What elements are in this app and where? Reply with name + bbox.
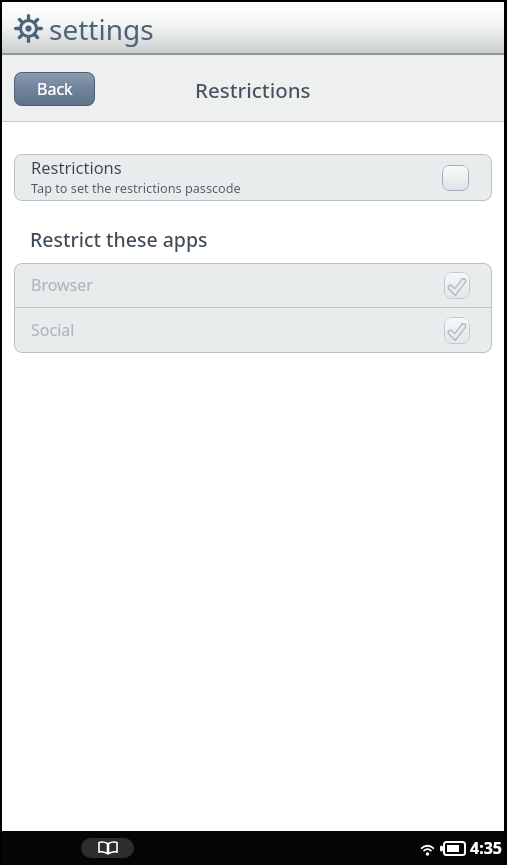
staticText: Tap to set the restrictions passcode	[31, 179, 241, 196]
staticText: 4:35	[470, 837, 502, 859]
staticText: Back	[37, 78, 73, 100]
button[interactable]: Social	[14, 308, 492, 352]
button[interactable]	[81, 838, 134, 858]
button[interactable]: Restrictions	[14, 154, 492, 201]
button[interactable]: Back	[14, 72, 95, 106]
staticText: settings	[49, 10, 154, 48]
button[interactable]: Browser	[14, 263, 492, 307]
staticText: Restrictions	[31, 156, 122, 178]
staticText: Restrict these apps	[30, 226, 208, 253]
staticText: Browser	[31, 274, 93, 296]
staticText: Restrictions	[195, 76, 311, 104]
staticText: Social	[31, 319, 75, 341]
